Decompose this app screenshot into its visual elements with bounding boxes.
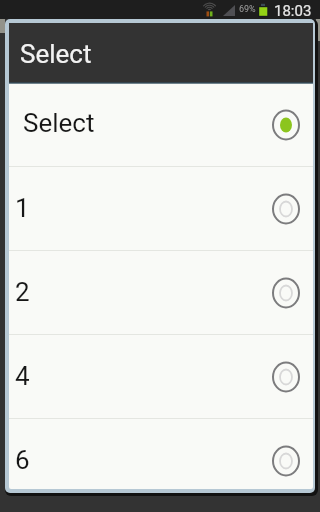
other: Mobile signal: [223, 5, 235, 16]
staticText: Select: [20, 39, 92, 69]
staticText: 2: [15, 277, 30, 307]
other: Wi-Fi connected: [201, 1, 218, 18]
staticText: 6: [15, 445, 30, 475]
button[interactable]: 1: [9, 167, 313, 251]
button[interactable]: 4: [9, 335, 313, 419]
staticText: 69%: [239, 4, 256, 15]
staticText: Select: [23, 108, 95, 138]
button[interactable]: Select: [9, 84, 313, 167]
staticText: 1: [15, 193, 30, 223]
button[interactable]: 2: [9, 251, 313, 335]
other: Battery 69 percent: [257, 3, 270, 18]
staticText: 4: [15, 361, 30, 391]
staticText: 18:03: [274, 2, 312, 20]
button[interactable]: 6: [9, 419, 313, 489]
